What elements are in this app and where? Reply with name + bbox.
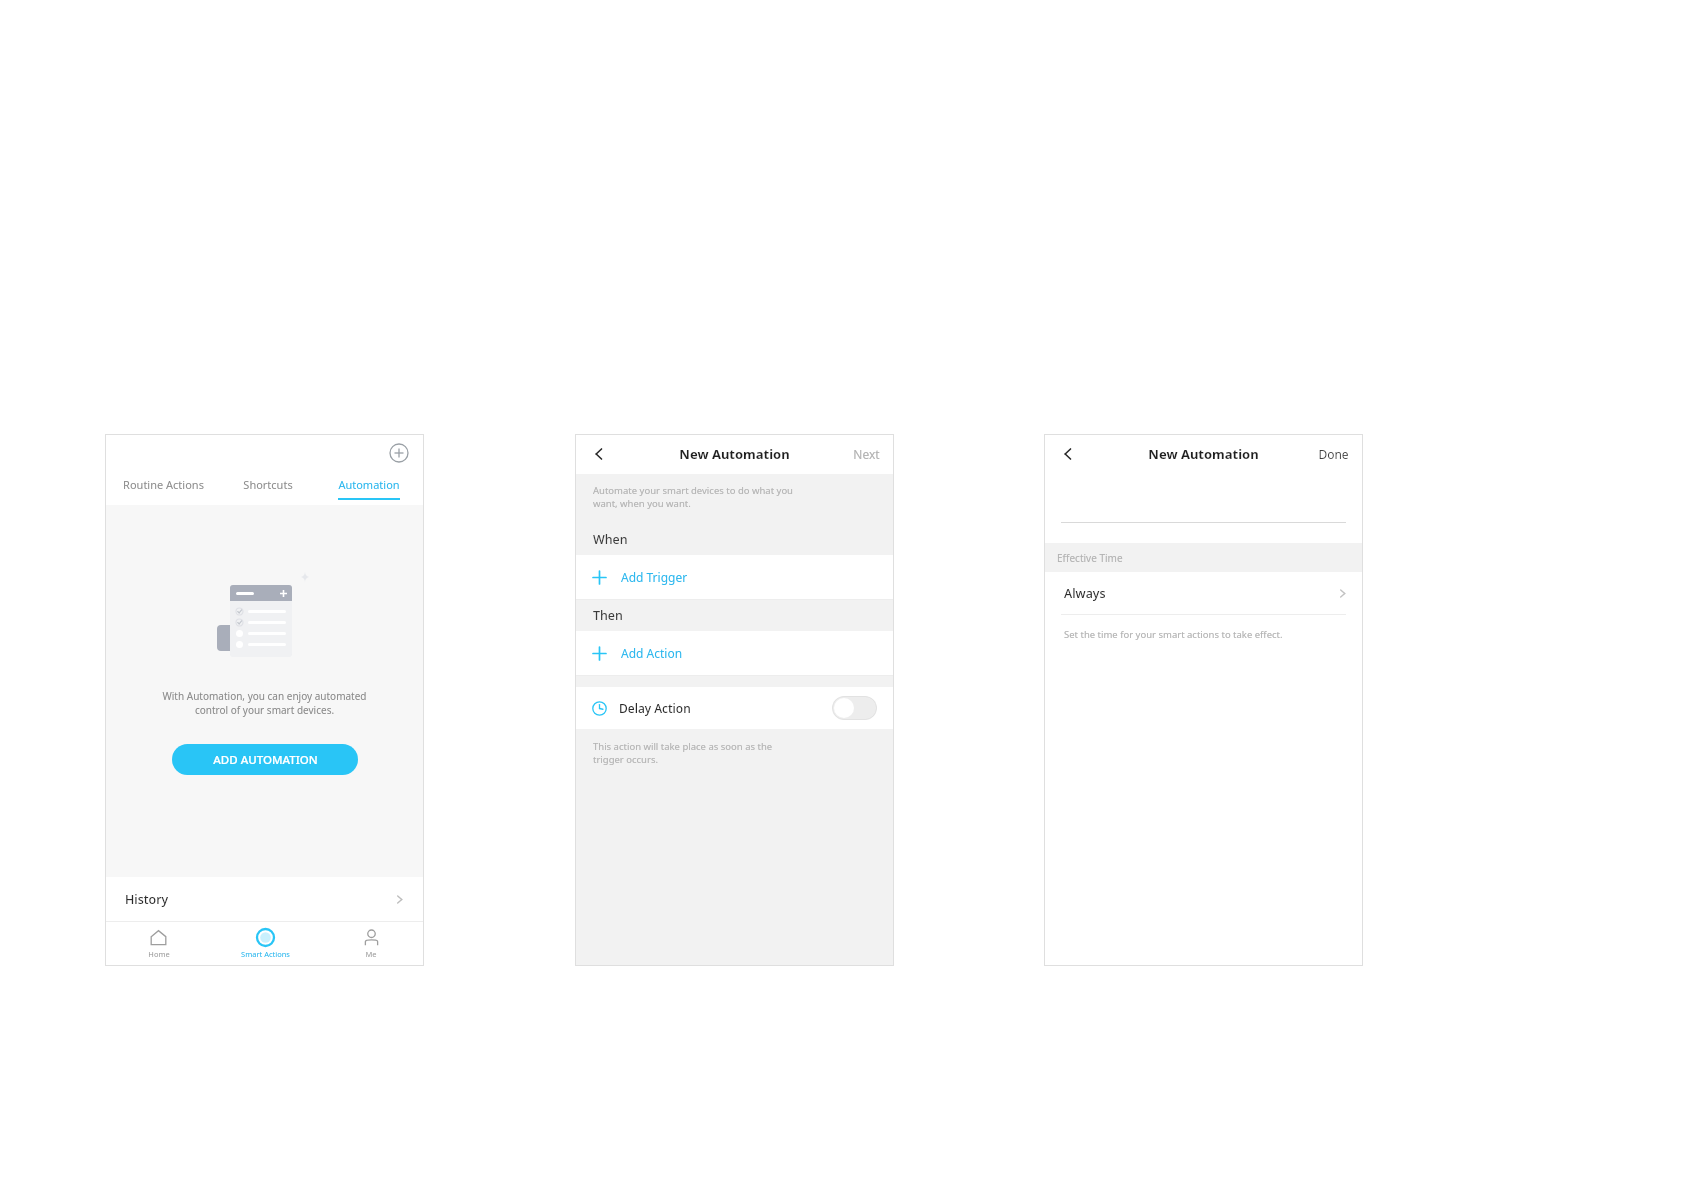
staticText: History bbox=[125, 891, 169, 908]
staticText: Add Trigger bbox=[621, 569, 688, 585]
staticText: Always bbox=[1064, 585, 1106, 602]
staticText: Shortcuts bbox=[243, 477, 293, 492]
button[interactable]: Delay Action toggle bbox=[832, 696, 877, 720]
staticText: New Automation bbox=[679, 445, 790, 463]
button[interactable]: Add Action bbox=[575, 631, 894, 675]
button[interactable]: Add Trigger bbox=[575, 555, 894, 599]
staticText: Then bbox=[593, 607, 623, 624]
staticText: Automate your smart devices to do what y… bbox=[593, 484, 793, 510]
button[interactable]: Shortcuts bbox=[222, 472, 313, 505]
staticText: Automation bbox=[338, 477, 400, 492]
button[interactable]: Back bbox=[1054, 440, 1082, 468]
staticText: Smart Actions bbox=[241, 949, 290, 959]
staticText: Effective Time bbox=[1057, 551, 1123, 565]
button[interactable]: Done bbox=[1318, 446, 1349, 462]
staticText: ADD AUTOMATION bbox=[213, 752, 318, 768]
staticText: Set the time for your smart actions to t… bbox=[1064, 628, 1283, 641]
staticText: Add Action bbox=[621, 645, 683, 661]
button[interactable]: Always bbox=[1044, 572, 1363, 614]
button[interactable]: ADD AUTOMATION bbox=[172, 744, 358, 775]
staticText: This action will take place as soon as t… bbox=[593, 740, 773, 766]
staticText: Routine Actions bbox=[123, 477, 204, 492]
staticText: Done bbox=[1318, 446, 1349, 462]
button[interactable]: Routine Actions bbox=[105, 472, 222, 505]
staticText: Delay Action bbox=[619, 700, 691, 716]
staticText: Home bbox=[148, 949, 170, 959]
button[interactable]: Home bbox=[105, 922, 212, 966]
button[interactable]: Smart Actions bbox=[212, 922, 318, 966]
button[interactable]: History bbox=[105, 877, 424, 921]
button[interactable]: Next bbox=[853, 446, 880, 462]
button[interactable]: Delay Action bbox=[575, 687, 894, 729]
button[interactable]: Back bbox=[585, 440, 613, 468]
staticText: Next bbox=[853, 446, 880, 462]
staticText: New Automation bbox=[1148, 445, 1259, 463]
button[interactable]: Me bbox=[318, 922, 424, 966]
button[interactable]: Automation bbox=[313, 472, 424, 505]
staticText: Me bbox=[365, 949, 377, 959]
staticText: With Automation, you can enjoy automated… bbox=[162, 689, 367, 717]
staticText: When bbox=[593, 531, 628, 548]
button[interactable]: Add bbox=[386, 440, 412, 466]
